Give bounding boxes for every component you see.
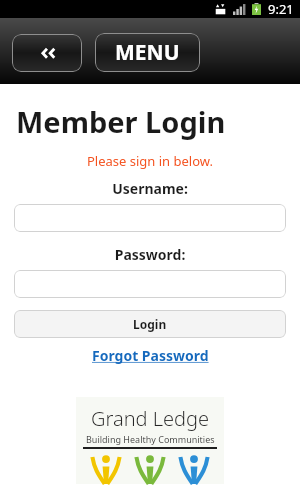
staticText: Please sign in below.	[0, 152, 300, 170]
staticText: 9:21	[268, 0, 294, 18]
button[interactable]: Login	[14, 310, 286, 338]
staticText: Username:	[0, 179, 300, 198]
staticText: Password:	[0, 245, 300, 264]
button[interactable]: Forgot Password	[86, 344, 215, 367]
staticText: MENU	[115, 38, 180, 67]
staticText: Login	[133, 316, 167, 332]
button[interactable]: MENU	[95, 33, 200, 72]
button[interactable]	[14, 204, 286, 232]
staticText: Grand Ledge	[91, 405, 210, 432]
button[interactable]	[14, 270, 286, 298]
staticText: Building Healthy Communities	[86, 433, 215, 445]
staticText: Member Login	[16, 102, 300, 141]
button[interactable]: Back	[12, 34, 82, 72]
